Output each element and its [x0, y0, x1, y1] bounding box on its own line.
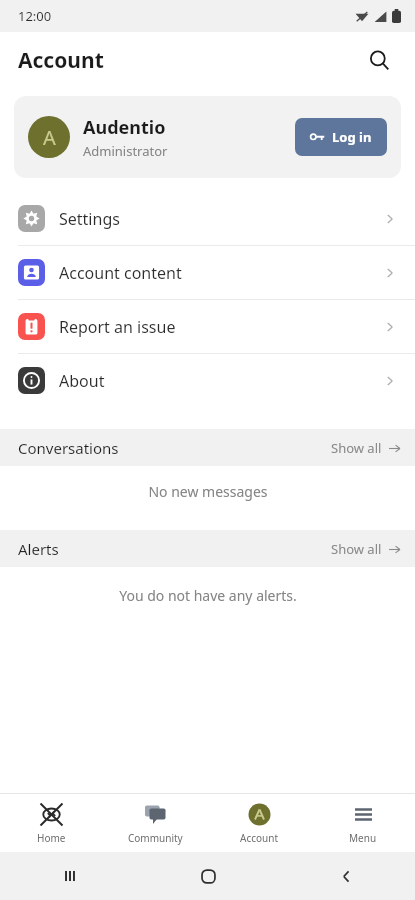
button[interactable]: Search — [357, 38, 401, 82]
staticText: Log in — [332, 128, 372, 146]
staticText: Home — [37, 831, 66, 845]
staticText: Show all — [331, 540, 382, 558]
staticText: No new messages — [148, 482, 268, 501]
staticText: Account — [240, 831, 279, 845]
staticText: Account content — [59, 262, 182, 284]
staticText: Show all — [331, 439, 382, 457]
staticText: Account — [18, 46, 104, 75]
button[interactable]: Account — [207, 794, 311, 852]
button[interactable]: Log in — [295, 118, 387, 156]
staticText: Administrator — [83, 142, 168, 160]
staticText: Report an issue — [59, 316, 176, 338]
button[interactable]: Report an issue — [0, 300, 415, 353]
staticText: Settings — [59, 208, 120, 230]
button[interactable]: About — [0, 354, 415, 407]
staticText: Alerts — [18, 539, 59, 559]
staticText: Audentio — [83, 115, 166, 140]
button[interactable]: Account content — [0, 246, 415, 299]
staticText: You do not have any alerts. — [119, 586, 297, 605]
staticText: Menu — [349, 831, 377, 845]
button[interactable]: Community — [103, 794, 207, 852]
button[interactable]: Menu — [311, 794, 415, 852]
staticText: Conversations — [18, 438, 119, 458]
staticText: 12:00 — [18, 7, 52, 25]
button[interactable]: A — [14, 96, 401, 178]
button[interactable]: Show all — [331, 439, 401, 457]
button[interactable]: Show all — [331, 540, 401, 558]
button[interactable]: Settings — [0, 192, 415, 245]
staticText: A — [43, 124, 56, 151]
button[interactable]: Home — [0, 794, 103, 852]
staticText: Community — [128, 831, 183, 845]
staticText: About — [59, 370, 105, 392]
